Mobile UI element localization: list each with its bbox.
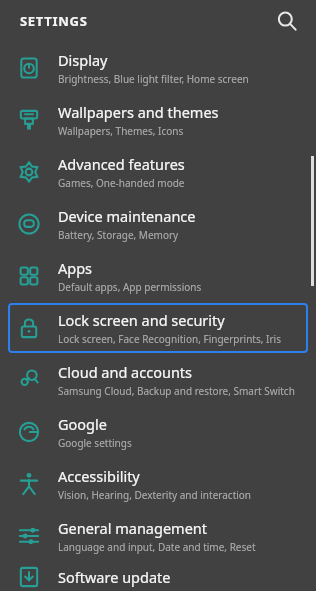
staticText: Accessibility [58, 466, 140, 486]
staticText: Battery, Storage, Memory [58, 228, 179, 242]
staticText: Google [58, 414, 107, 434]
staticText: Device maintenance [58, 206, 196, 226]
staticText: Lock screen, Face Recognition, Fingerpri… [58, 332, 281, 346]
button[interactable]: General management [0, 510, 316, 562]
staticText: Apps [58, 258, 93, 278]
button[interactable]: Display [0, 42, 316, 94]
staticText: Language and input, Date and time, Reset [58, 540, 256, 554]
staticText: Google settings [58, 436, 132, 450]
button[interactable]: Software update [0, 562, 316, 591]
button[interactable]: Search [270, 4, 304, 38]
staticText: Vision, Hearing, Dexterity and interacti… [58, 488, 252, 502]
button[interactable]: Wallpapers and themes [0, 94, 316, 146]
staticText: General management [58, 518, 208, 538]
button[interactable]: Apps [0, 250, 316, 302]
staticText: Advanced features [58, 154, 185, 174]
staticText: Default apps, App permissions [58, 280, 202, 294]
button[interactable]: Device maintenance [0, 198, 316, 250]
staticText: Wallpapers and themes [58, 102, 219, 122]
staticText: Brightness, Blue light filter, Home scre… [58, 72, 249, 86]
staticText: Cloud and accounts [58, 362, 193, 382]
staticText: Samsung Cloud, Backup and restore, Smart… [58, 384, 295, 398]
staticText: Wallpapers, Themes, Icons [58, 124, 184, 138]
button[interactable]: Advanced features [0, 146, 316, 198]
staticText: Lock screen and security [58, 310, 225, 330]
staticText: SETTINGS [20, 12, 88, 30]
button[interactable]: Accessibility [0, 458, 316, 510]
staticText: Games, One-handed mode [58, 176, 185, 190]
button[interactable]: Google [0, 406, 316, 458]
button[interactable]: Lock screen and security [0, 302, 316, 354]
staticText: Display [58, 50, 108, 70]
button[interactable]: Cloud and accounts [0, 354, 316, 406]
staticText: Software update [58, 567, 171, 587]
